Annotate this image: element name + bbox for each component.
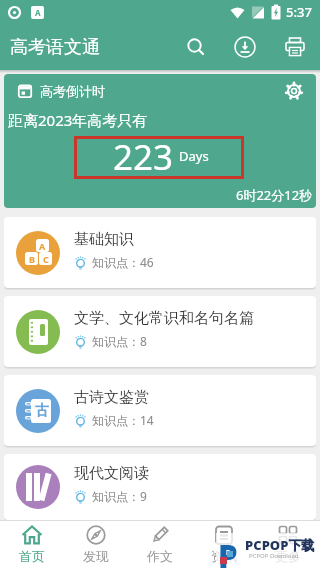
staticText: 5:37	[286, 3, 312, 21]
staticText: 高考语文通	[10, 36, 100, 59]
staticText: 高考倒计时	[40, 83, 105, 99]
button[interactable]	[233, 35, 257, 59]
button[interactable]: 文学、文化常识和名句名篇	[4, 296, 316, 367]
staticText: C	[43, 253, 49, 265]
staticText: 首页	[19, 548, 45, 564]
staticText: 知识点：14	[92, 412, 154, 428]
staticText: Days	[179, 147, 209, 165]
button[interactable]: A	[4, 217, 316, 288]
staticText: 知识点：46	[92, 254, 154, 270]
button[interactable]: 作文	[128, 521, 192, 569]
staticText: 作文	[147, 548, 173, 564]
staticText: 知识点：8	[92, 333, 147, 349]
staticText: PCPOP Download	[249, 552, 299, 560]
staticText: 资讯	[211, 548, 237, 564]
button[interactable]: 更多	[256, 521, 320, 569]
staticText: A	[35, 7, 41, 18]
staticText: 现代文阅读	[74, 464, 149, 483]
staticText: 文学、文化常识和名句名篇	[74, 309, 254, 328]
staticText: 古诗文鉴赏	[74, 388, 149, 407]
button[interactable]: 发现	[64, 521, 128, 569]
staticText: 更多	[275, 548, 301, 564]
staticText: A	[39, 240, 46, 252]
staticText: 基础知识	[74, 230, 134, 249]
staticText: 发现	[83, 548, 109, 564]
staticText: 223	[113, 133, 174, 176]
staticText: 距离2023年高考只有	[8, 110, 148, 130]
staticText: PCPOP下载	[245, 536, 315, 554]
button[interactable]	[184, 35, 208, 59]
staticText: 知识点：9	[92, 488, 147, 504]
staticText: P	[218, 535, 238, 569]
button[interactable]: 古	[4, 375, 316, 446]
button[interactable]: 资讯	[192, 521, 256, 569]
button[interactable]	[283, 35, 307, 59]
button[interactable]: 首页	[0, 521, 64, 569]
staticText: 古	[35, 402, 49, 420]
staticText: 6时22分12秒	[236, 186, 313, 204]
button[interactable]: 高考倒计时	[4, 74, 316, 208]
staticText: B	[29, 253, 35, 265]
button[interactable]: 现代文阅读	[4, 454, 316, 520]
button[interactable]	[284, 81, 304, 101]
